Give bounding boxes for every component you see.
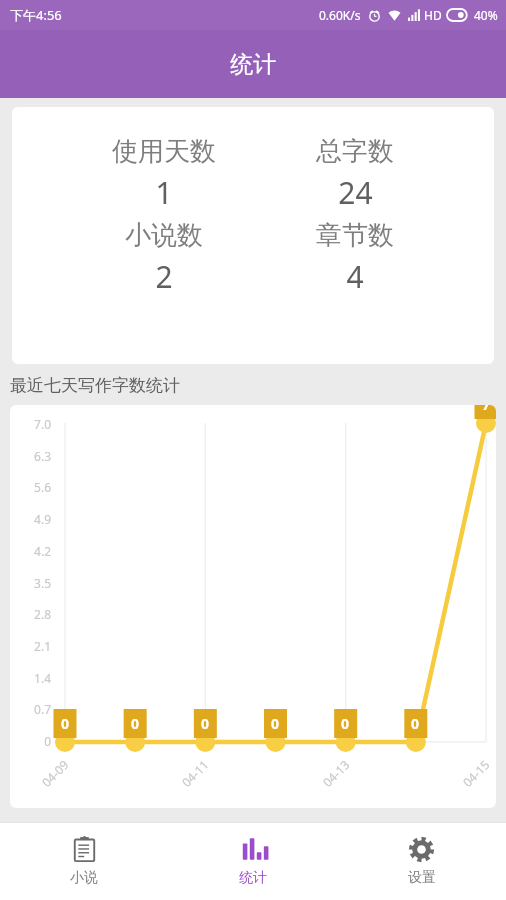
staticText: 0 xyxy=(16,733,51,749)
staticText: 1 xyxy=(155,172,173,213)
staticText: 2.1 xyxy=(16,638,51,654)
button[interactable]: 使用天数 xyxy=(12,107,494,364)
button[interactable]: 小说 xyxy=(0,823,168,900)
staticText: 2 xyxy=(155,256,173,297)
staticText: 04-11 xyxy=(178,756,212,790)
staticText: 4 xyxy=(346,256,364,297)
staticText: 0 xyxy=(411,714,420,733)
staticText: 5.6 xyxy=(16,479,51,495)
staticText: 总字数 xyxy=(316,135,394,168)
staticText: 0 xyxy=(271,714,280,733)
staticText: 0 xyxy=(341,714,350,733)
staticText: 1.4 xyxy=(16,670,51,686)
button[interactable]: 统计 xyxy=(168,823,337,900)
staticText: 7.0 xyxy=(16,416,51,432)
staticText: 04-13 xyxy=(319,756,353,790)
staticText: 设置 xyxy=(408,869,436,887)
staticText: 统计 xyxy=(230,50,276,79)
staticText: 04-15 xyxy=(459,756,493,790)
staticText: 0.60K/s xyxy=(319,7,361,23)
staticText: HD xyxy=(424,7,442,23)
staticText: 7 xyxy=(482,405,491,414)
staticText: 40% xyxy=(474,7,498,23)
staticText: 小说数 xyxy=(125,219,203,252)
button[interactable]: 7.0 xyxy=(10,405,496,808)
staticText: 下午4:56 xyxy=(10,6,62,24)
staticText: 统计 xyxy=(239,869,267,887)
staticText: 使用天数 xyxy=(112,135,216,168)
staticText: 24 xyxy=(338,172,373,213)
staticText: 0 xyxy=(201,714,210,733)
staticText: 0 xyxy=(131,714,140,733)
staticText: 0 xyxy=(61,714,70,733)
staticText: 4.9 xyxy=(16,511,51,527)
button[interactable]: 设置 xyxy=(337,823,506,900)
staticText: 6.3 xyxy=(16,448,51,464)
staticText: 2.8 xyxy=(16,606,51,622)
staticText: 04-09 xyxy=(38,756,72,790)
staticText: 4.2 xyxy=(16,543,51,559)
staticText: 3.5 xyxy=(16,575,51,591)
staticText: 0.7 xyxy=(16,701,51,717)
staticText: 小说 xyxy=(70,869,98,887)
staticText: 章节数 xyxy=(316,219,394,252)
staticText: 最近七天写作字数统计 xyxy=(10,375,180,396)
